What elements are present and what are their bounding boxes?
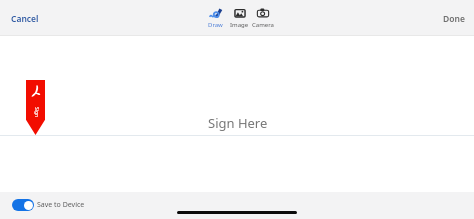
button[interactable]: Draw bbox=[203, 0, 227, 36]
button[interactable]: Done bbox=[435, 9, 474, 29]
other: Save to Device toggle, on bbox=[12, 199, 34, 211]
staticText: Save to Device bbox=[37, 200, 85, 210]
staticText: Sign bbox=[33, 107, 40, 118]
staticText: Sign Here bbox=[208, 114, 268, 132]
staticText: Image bbox=[230, 21, 249, 29]
staticText: Draw bbox=[208, 21, 223, 29]
button[interactable]: Cancel bbox=[0, 9, 47, 29]
button[interactable]: Image bbox=[227, 0, 251, 36]
button[interactable]: Camera bbox=[251, 0, 275, 36]
staticText: Camera bbox=[252, 21, 274, 29]
button[interactable]: Save to Device toggle, on bbox=[0, 198, 93, 212]
